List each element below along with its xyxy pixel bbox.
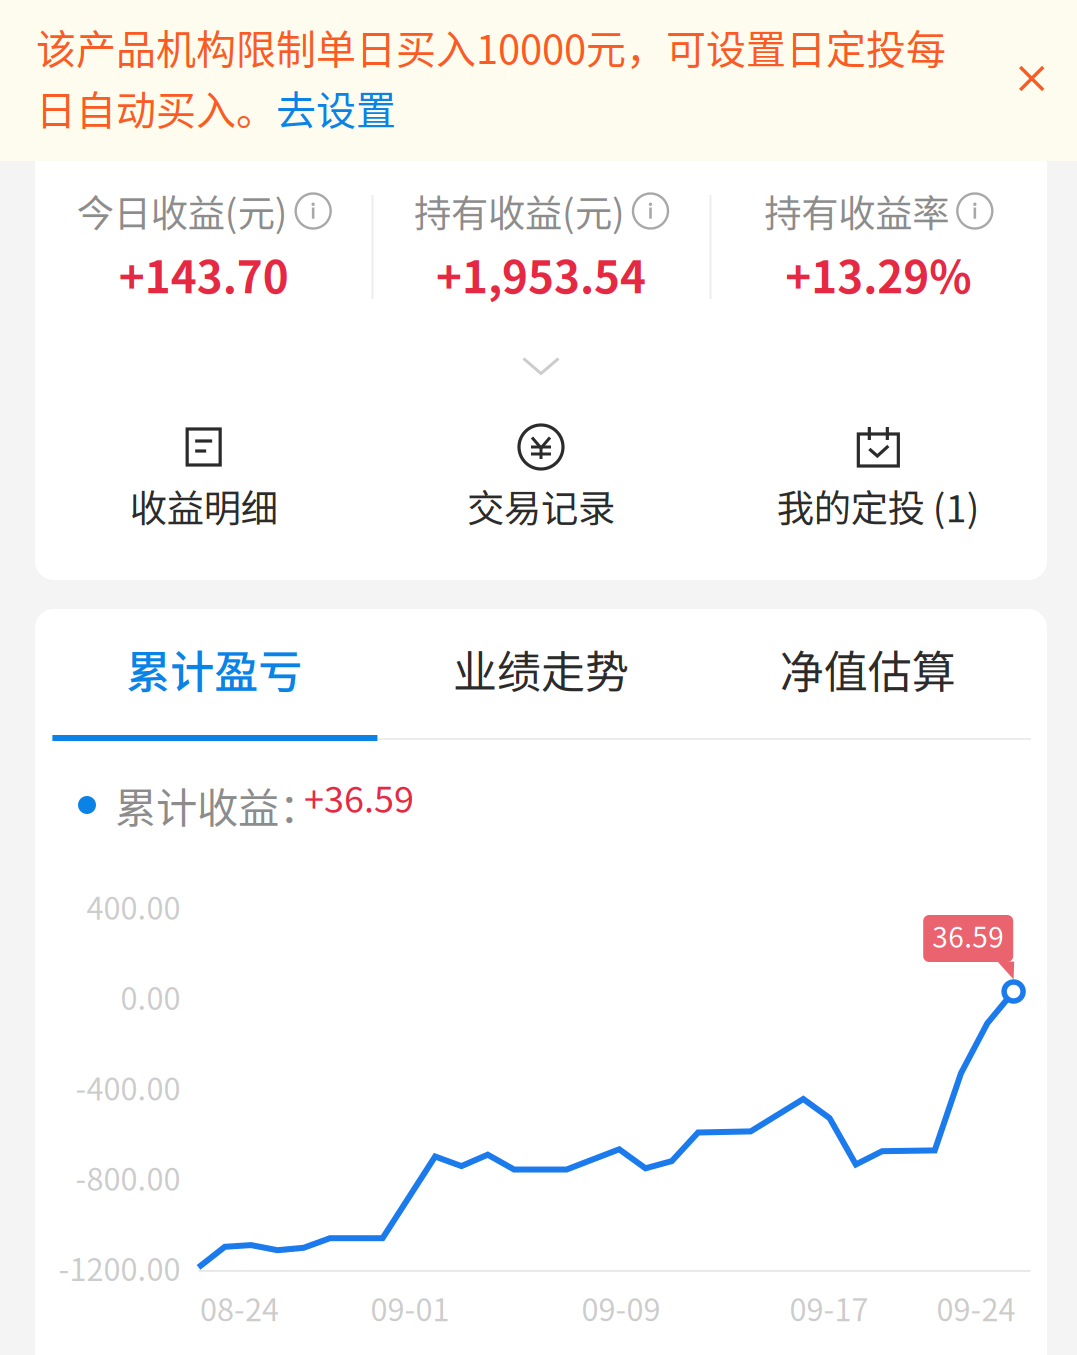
staticText: 累计盈亏 xyxy=(126,637,302,701)
button[interactable]: 业绩走势 xyxy=(378,636,704,702)
staticText: 交易记录 xyxy=(467,479,615,533)
staticText: 累计收益： xyxy=(115,775,320,835)
staticText: +1,953.54 xyxy=(436,242,646,306)
button[interactable]: 累计盈亏 xyxy=(51,636,378,702)
staticText: 0.00 xyxy=(120,974,180,1019)
staticText: -800.00 xyxy=(75,1155,180,1199)
staticText: 08-24 xyxy=(200,1286,279,1330)
staticText: 09-24 xyxy=(936,1286,1015,1330)
staticText: 我的定投 (1) xyxy=(777,479,980,533)
staticText: 持有收益率 xyxy=(764,184,949,238)
staticText: 今日收益(元) xyxy=(77,184,288,238)
staticText: 该产品机构限制单日买入10000元，可设置日定投每 xyxy=(36,17,946,75)
staticText: 持有收益(元) xyxy=(414,184,625,238)
staticText: 日自动买入。 xyxy=(36,78,276,136)
staticText: 净值估算 xyxy=(780,637,956,701)
button[interactable]: 收益明细 xyxy=(35,424,372,526)
button[interactable]: Close xyxy=(995,41,1069,115)
staticText: +13.29% xyxy=(785,242,971,306)
staticText: 09-01 xyxy=(370,1286,449,1330)
button[interactable]: 净值估算 xyxy=(704,636,1031,702)
staticText: 去设置 xyxy=(276,78,396,136)
staticText: 36.59 xyxy=(932,915,1004,956)
staticText: +143.70 xyxy=(119,242,289,306)
staticText: +36.59 xyxy=(304,771,414,823)
staticText: 业绩走势 xyxy=(453,637,629,701)
button[interactable]: 我的定投 (1) xyxy=(710,424,1047,526)
button[interactable]: Expand xyxy=(472,339,610,393)
staticText: 09-17 xyxy=(789,1286,868,1330)
staticText: 400.00 xyxy=(86,884,180,929)
button[interactable]: 交易记录 xyxy=(372,424,710,526)
staticText: 09-09 xyxy=(581,1286,660,1330)
staticText: 收益明细 xyxy=(130,479,278,533)
staticText: -1200.00 xyxy=(58,1245,180,1290)
staticText: -400.00 xyxy=(75,1065,180,1109)
